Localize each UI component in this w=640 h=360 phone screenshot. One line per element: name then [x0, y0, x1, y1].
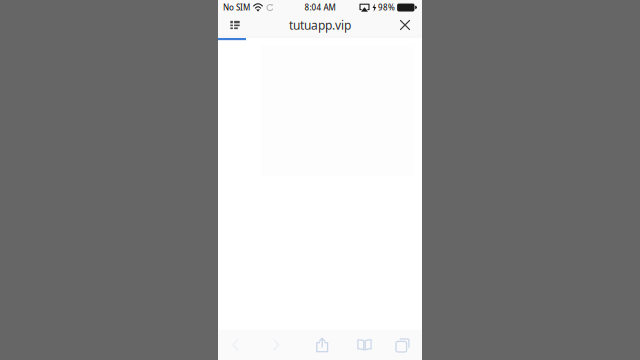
button[interactable]: Close	[390, 15, 420, 35]
staticText: 8:04 AM	[304, 2, 335, 13]
button[interactable]: Bookmarks	[344, 330, 384, 360]
staticText: 98%	[378, 2, 395, 13]
staticText: No SIM	[223, 2, 250, 13]
staticText: tutuapp.vip	[289, 17, 351, 33]
button[interactable]: Share	[300, 330, 344, 360]
button[interactable]: Tabs	[384, 330, 421, 360]
button[interactable]: Reader View	[220, 15, 250, 35]
